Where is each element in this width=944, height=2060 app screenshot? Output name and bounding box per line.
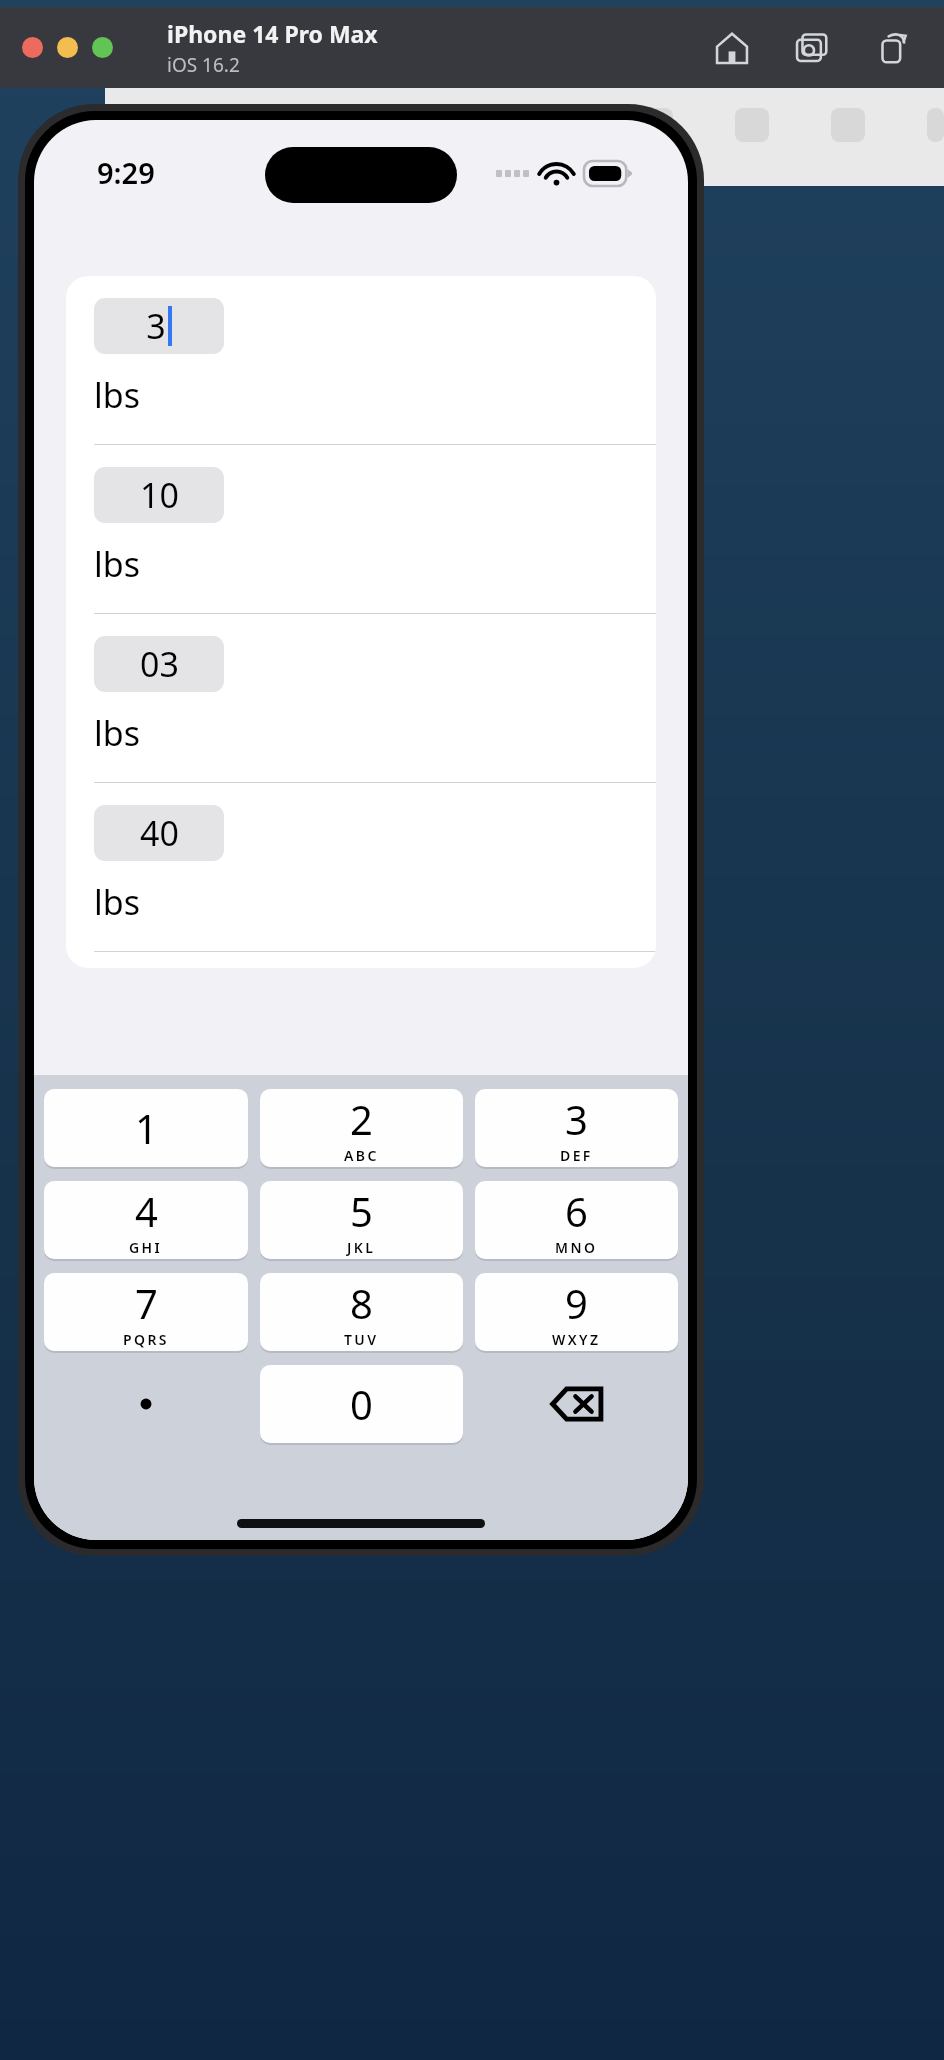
button[interactable]: 2 (260, 1089, 463, 1167)
button[interactable]: 4 (44, 1181, 248, 1259)
button[interactable]: Maximize (92, 37, 113, 58)
button[interactable]: 7 (44, 1273, 248, 1351)
staticText: 40 (140, 810, 179, 856)
staticText: lbs (94, 541, 140, 587)
button[interactable]: Close (22, 37, 43, 58)
staticText: 0 (350, 1377, 373, 1431)
button[interactable]: Home (710, 26, 754, 70)
button[interactable] (44, 1365, 248, 1443)
staticText: TUV (344, 1330, 379, 1349)
button[interactable]: 10 (94, 467, 224, 523)
button[interactable]: 5 (260, 1181, 463, 1259)
staticText: 5 (350, 1184, 373, 1238)
button[interactable]: 40 (94, 805, 224, 861)
staticText: 8 (350, 1276, 373, 1330)
button[interactable]: Minimize (57, 37, 78, 58)
staticText: 1 (135, 1101, 158, 1155)
staticText: PQRS (123, 1330, 169, 1349)
staticText: 3 (565, 1092, 588, 1146)
staticText: ABC (344, 1146, 379, 1165)
staticText: lbs (94, 879, 140, 925)
staticText: WXYZ (552, 1330, 601, 1349)
button[interactable]: 0 (260, 1365, 463, 1443)
button[interactable]: 9 (475, 1273, 678, 1351)
staticText: DEF (560, 1146, 593, 1165)
staticText: 03 (140, 641, 179, 687)
staticText: lbs (94, 372, 140, 418)
staticText: 10 (140, 472, 179, 518)
staticText: 6 (565, 1184, 588, 1238)
staticText: iOS 16.2 (167, 52, 240, 78)
button[interactable]: Share (870, 26, 914, 70)
staticText: 9 (565, 1276, 588, 1330)
button[interactable]: 3 (475, 1089, 678, 1167)
button[interactable]: 3 (94, 298, 224, 354)
button[interactable]: 6 (475, 1181, 678, 1259)
button[interactable]: Screenshot (790, 26, 834, 70)
staticText: 7 (135, 1276, 158, 1330)
staticText: GHI (129, 1238, 163, 1257)
button[interactable]: 8 (260, 1273, 463, 1351)
staticText: 2 (350, 1092, 373, 1146)
staticText: iPhone 14 Pro Max (167, 18, 378, 49)
staticText: 9:29 (97, 153, 155, 192)
staticText: lbs (94, 710, 140, 756)
button[interactable]: Backspace (475, 1365, 678, 1443)
staticText: 4 (135, 1184, 158, 1238)
staticText: JKL (347, 1238, 376, 1257)
button[interactable]: 1 (44, 1089, 248, 1167)
staticText: MNO (555, 1238, 598, 1257)
button[interactable]: 03 (94, 636, 224, 692)
staticText: 3 (146, 303, 166, 349)
